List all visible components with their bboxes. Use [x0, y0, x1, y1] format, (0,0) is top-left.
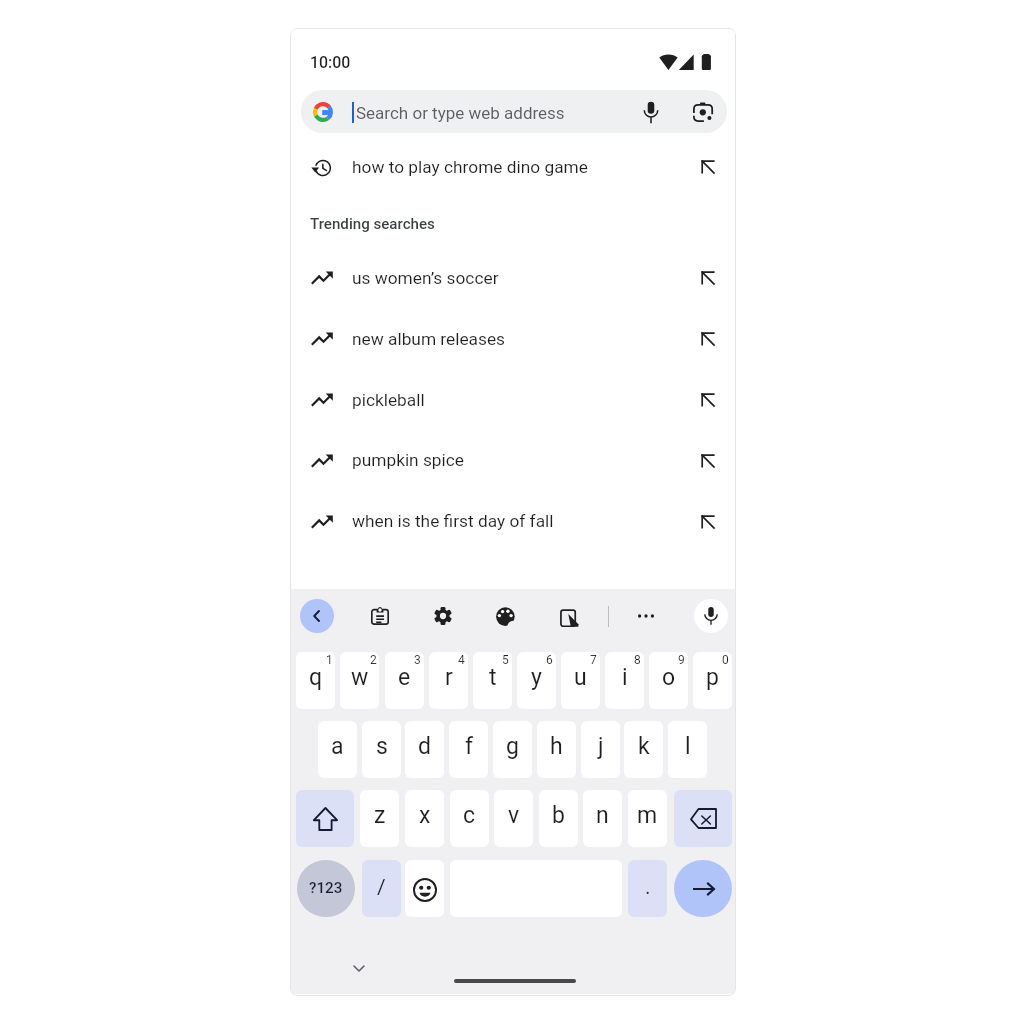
button[interactable]: w [340, 652, 379, 709]
button[interactable]: o [649, 652, 688, 709]
staticText: b [552, 802, 565, 829]
staticText: h [550, 733, 563, 760]
staticText: x [419, 802, 431, 829]
staticText: us women’s soccer [352, 268, 499, 288]
staticText: . [645, 875, 651, 900]
staticText: 0 [722, 653, 729, 667]
button[interactable]: y [517, 652, 556, 709]
button[interactable]: Hide keyboard [350, 959, 368, 977]
staticText: pumpkin spice [352, 450, 465, 470]
staticText: d [418, 733, 431, 760]
staticText: 2 [370, 653, 377, 667]
button[interactable]: b [539, 790, 578, 847]
staticText: p [706, 664, 719, 691]
button[interactable]: c [450, 790, 489, 847]
button[interactable]: Voice search [640, 101, 662, 124]
button[interactable]: Back [300, 599, 334, 633]
staticText: e [398, 664, 411, 691]
staticText: k [638, 733, 650, 760]
staticText: o [662, 664, 676, 691]
button[interactable]: Settings [434, 607, 452, 625]
staticText: ?123 [309, 879, 343, 897]
staticText: 7 [590, 653, 597, 667]
button[interactable] [291, 492, 735, 552]
button[interactable]: m [628, 790, 667, 847]
staticText: when is the first day of fall [352, 511, 554, 531]
staticText: 10:00 [310, 53, 351, 72]
staticText: s [376, 733, 388, 760]
button[interactable] [674, 860, 732, 917]
button[interactable]: n [583, 790, 622, 847]
staticText: r [445, 664, 453, 691]
staticText: u [574, 664, 587, 691]
staticText: 6 [546, 653, 553, 667]
button[interactable]: s [362, 721, 401, 778]
button[interactable]: / [362, 860, 401, 917]
staticText: i [622, 664, 628, 691]
staticText: Search or type web address [356, 103, 565, 123]
staticText: 9 [678, 653, 685, 667]
button[interactable]: z [360, 790, 399, 847]
button[interactable]: r [429, 652, 468, 709]
button[interactable] [405, 860, 444, 917]
staticText: c [463, 802, 476, 829]
button[interactable]: j [581, 721, 620, 778]
button[interactable] [301, 90, 727, 133]
button[interactable]: l [668, 721, 707, 778]
button[interactable]: q [296, 652, 335, 709]
staticText: 1 [326, 653, 333, 667]
staticText: Trending searches [310, 215, 435, 233]
button[interactable]: f [449, 721, 488, 778]
button[interactable]: More options [635, 605, 657, 627]
staticText: m [637, 802, 658, 829]
button[interactable]: v [494, 790, 533, 847]
staticText: q [309, 664, 323, 691]
button[interactable]: t [473, 652, 512, 709]
button[interactable]: x [405, 790, 444, 847]
staticText: pickleball [352, 390, 425, 410]
button[interactable] [291, 309, 735, 369]
button[interactable]: a [318, 721, 357, 778]
staticText: / [377, 875, 386, 900]
staticText: 8 [634, 653, 641, 667]
staticText: how to play chrome dino game [352, 157, 588, 177]
staticText: w [351, 664, 369, 691]
staticText: j [598, 733, 604, 760]
staticText: n [596, 802, 609, 829]
staticText: y [531, 664, 542, 691]
button[interactable]: ?123 [297, 860, 355, 917]
button[interactable] [674, 790, 732, 847]
button[interactable]: Themes [496, 607, 515, 626]
staticText: f [465, 733, 473, 760]
button[interactable] [291, 137, 735, 197]
button[interactable]: p [693, 652, 732, 709]
button[interactable]: h [537, 721, 576, 778]
staticText: new album releases [352, 329, 506, 349]
button[interactable]: u [561, 652, 600, 709]
staticText: z [374, 802, 386, 829]
button[interactable]: d [405, 721, 444, 778]
button[interactable] [291, 370, 735, 430]
button[interactable]: Voice typing [694, 599, 728, 633]
staticText: t [489, 664, 497, 691]
staticText: 3 [414, 653, 421, 667]
button[interactable] [291, 248, 735, 308]
staticText: l [685, 733, 691, 760]
button[interactable]: k [624, 721, 663, 778]
button[interactable]: e [385, 652, 424, 709]
button[interactable]: Clipboard [371, 607, 389, 625]
button[interactable] [291, 431, 735, 491]
staticText: a [331, 733, 344, 760]
staticText: v [508, 802, 520, 829]
button[interactable]: Search with Google Lens [693, 102, 713, 122]
staticText: 5 [502, 653, 509, 667]
button[interactable]: i [605, 652, 644, 709]
button[interactable]: g [493, 721, 532, 778]
button[interactable]: Stickers [559, 607, 578, 626]
button[interactable]: . [628, 860, 667, 917]
staticText: g [506, 733, 519, 760]
button[interactable] [296, 790, 354, 847]
staticText: 4 [458, 653, 465, 667]
